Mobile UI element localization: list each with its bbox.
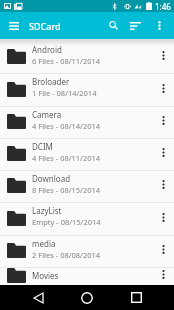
- button[interactable]: More options: [152, 268, 174, 285]
- button[interactable]: Back: [9, 285, 67, 310]
- staticText: SDCard: [29, 20, 61, 32]
- button[interactable]: More options: [152, 74, 174, 106]
- button[interactable]: Search: [102, 12, 124, 39]
- staticText: Broloader: [32, 76, 70, 87]
- button[interactable]: Camera: [0, 107, 174, 139]
- staticText: 4 Files - 08/14/2014: [32, 121, 101, 131]
- button[interactable]: More options: [152, 42, 174, 73]
- staticText: 2 Files - 08/08/2014: [32, 250, 101, 260]
- staticText: 1:46: [155, 1, 171, 12]
- button[interactable]: Open navigation drawer: [0, 12, 28, 39]
- button[interactable]: More options: [146, 12, 172, 39]
- button[interactable]: Broloader: [0, 74, 174, 107]
- staticText: 1 File - 08/14/2014: [32, 88, 97, 98]
- staticText: Android: [32, 44, 62, 55]
- staticText: 6 Files - 08/11/2014: [32, 56, 101, 66]
- button[interactable]: Recents: [107, 285, 165, 310]
- staticText: LazyList: [32, 205, 62, 216]
- staticText: Download: [32, 173, 71, 184]
- staticText: media: [32, 238, 56, 249]
- button[interactable]: Download: [0, 171, 174, 203]
- staticText: Movies: [32, 270, 59, 281]
- button[interactable]: Home: [58, 285, 116, 310]
- staticText: 8 Files - 08/15/2014: [32, 185, 101, 195]
- staticText: DCIM: [32, 141, 53, 152]
- button[interactable]: More options: [152, 107, 174, 138]
- staticText: 1 File - 08/08/2014: [32, 282, 97, 292]
- staticText: 4 Files - 08/11/2014: [32, 153, 101, 163]
- button[interactable]: DCIM: [0, 139, 174, 171]
- staticText: Empty - 08/15/2014: [32, 217, 101, 227]
- button[interactable]: LazyList: [0, 203, 174, 236]
- button[interactable]: Android: [0, 42, 174, 74]
- button[interactable]: Sort: [124, 12, 146, 39]
- button[interactable]: Movies: [0, 268, 174, 285]
- button[interactable]: More options: [152, 139, 174, 170]
- button[interactable]: media: [0, 236, 174, 268]
- button[interactable]: More options: [152, 203, 174, 235]
- button[interactable]: More options: [152, 171, 174, 202]
- staticText: Camera: [32, 109, 62, 120]
- button[interactable]: More options: [152, 236, 174, 267]
